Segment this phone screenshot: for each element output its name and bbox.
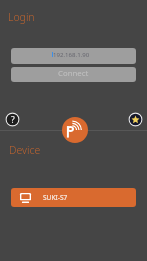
staticText: Login [8, 10, 35, 24]
staticText: 192.168.1.90 [53, 50, 90, 58]
button[interactable]: App logo [62, 117, 88, 143]
staticText: SUKI-S7 [43, 193, 68, 202]
staticText: Connect [58, 68, 89, 79]
button[interactable]: Connect [11, 67, 136, 82]
button[interactable]: Favorite [128, 112, 143, 127]
button[interactable]: SUKI-S7 [11, 188, 136, 207]
staticText: ? [11, 114, 15, 126]
button[interactable]: Help [5, 112, 20, 127]
staticText: Device [9, 143, 41, 157]
button[interactable]: 192.168.1.90 [11, 48, 136, 64]
